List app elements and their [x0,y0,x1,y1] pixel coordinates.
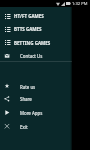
staticText: Share [20,96,32,102]
button[interactable]: More Apps [0,106,72,119]
button[interactable]: HT/FT GAMES [0,9,72,22]
button[interactable]: BTTS GAMES [0,22,72,35]
staticText: Exit [20,124,28,130]
staticText: HT/FT GAMES [14,13,44,19]
staticText: BTTS GAMES [14,26,42,32]
staticText: Contact Us [20,53,43,59]
button[interactable]: BETTING GAMES [0,36,72,49]
staticText: More Apps [20,110,43,116]
button[interactable]: Share [0,92,72,105]
staticText: 1:32 PM [72,1,88,7]
staticText: BETTING GAMES [14,40,51,46]
staticText: Rate us [20,84,36,90]
button[interactable]: Contact Us [0,49,72,62]
button[interactable]: Exit [0,120,72,133]
button[interactable]: Rate us [0,80,72,93]
